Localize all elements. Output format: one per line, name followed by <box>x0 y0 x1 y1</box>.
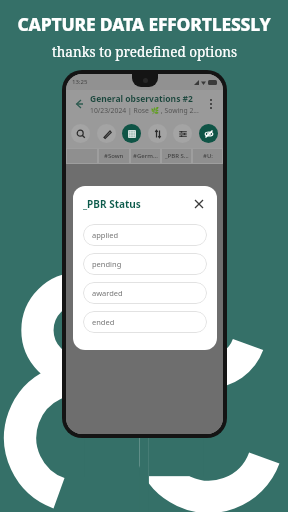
button[interactable]: Hide columns <box>199 124 218 143</box>
staticText: awarded <box>92 288 123 298</box>
button[interactable]: Edit <box>97 124 116 143</box>
staticText: General observations #2 <box>90 93 193 105</box>
staticText: #Sown <box>104 152 124 160</box>
button[interactable]: applied <box>83 224 207 246</box>
button[interactable]: Search <box>71 124 90 143</box>
button[interactable]: ended <box>83 311 207 333</box>
button[interactable]: Sort <box>148 124 167 143</box>
button[interactable]: More options <box>204 97 218 111</box>
staticText: _PBR S... <box>165 152 189 160</box>
button[interactable]: Back <box>71 96 87 112</box>
staticText: applied <box>92 230 119 240</box>
button[interactable]: Close <box>191 196 207 212</box>
button[interactable]: awarded <box>83 282 207 304</box>
staticText: #Germ... <box>133 152 158 160</box>
staticText: 10/23/2024 | Rose 🌿 , Sowing 2... <box>90 106 199 115</box>
staticText: #U: <box>203 152 213 160</box>
button[interactable]: Filter <box>173 124 192 143</box>
staticText: _PBR Status <box>83 197 141 211</box>
staticText: 13:25 <box>72 78 88 86</box>
staticText: thanks to predefined options <box>52 43 237 61</box>
staticText: ended <box>92 317 115 327</box>
staticText: pending <box>92 259 122 269</box>
button[interactable]: pending <box>83 253 207 275</box>
button[interactable]: Table view <box>122 124 141 143</box>
staticText: CAPTURE DATA EFFORTLESSLY <box>17 12 271 36</box>
